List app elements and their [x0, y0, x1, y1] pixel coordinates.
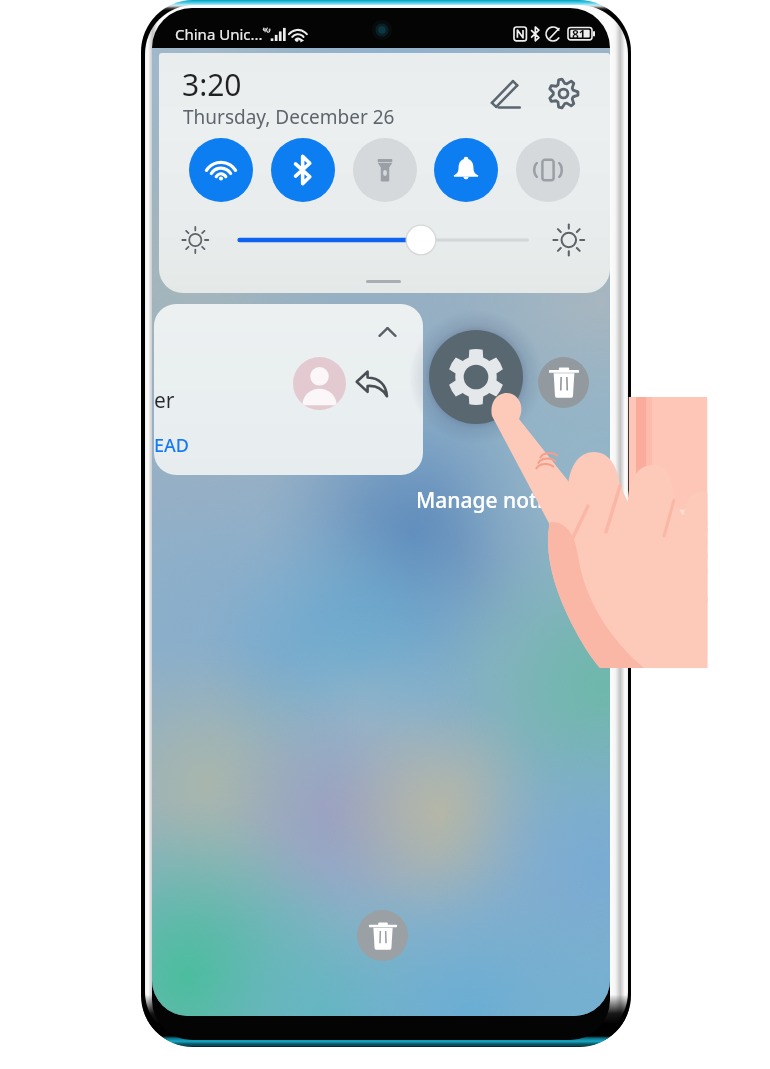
button[interactable]: Notification settings — [429, 330, 523, 424]
button[interactable]: Wi-Fi — [189, 138, 253, 202]
staticText: China Unic... — [175, 24, 263, 44]
staticText: EAD — [154, 433, 189, 458]
button[interactable]: er — [154, 304, 423, 475]
staticText: 81 — [572, 26, 586, 42]
button[interactable]: Flashlight — [353, 138, 417, 202]
staticText: er — [154, 386, 175, 415]
button[interactable]: Clear all notifications — [357, 910, 408, 961]
button[interactable]: Clear notifications — [538, 357, 589, 408]
button[interactable]: Bluetooth — [271, 138, 335, 202]
button[interactable]: Settings — [542, 72, 585, 115]
staticText: 3:20 — [182, 64, 242, 105]
button[interactable]: Ring — [434, 138, 498, 202]
staticText: Thursday, December 26 — [183, 104, 395, 130]
staticText: Manage notific — [416, 486, 567, 515]
button[interactable]: Edit quick settings — [484, 72, 527, 115]
button[interactable]: Vibrate — [516, 138, 580, 202]
